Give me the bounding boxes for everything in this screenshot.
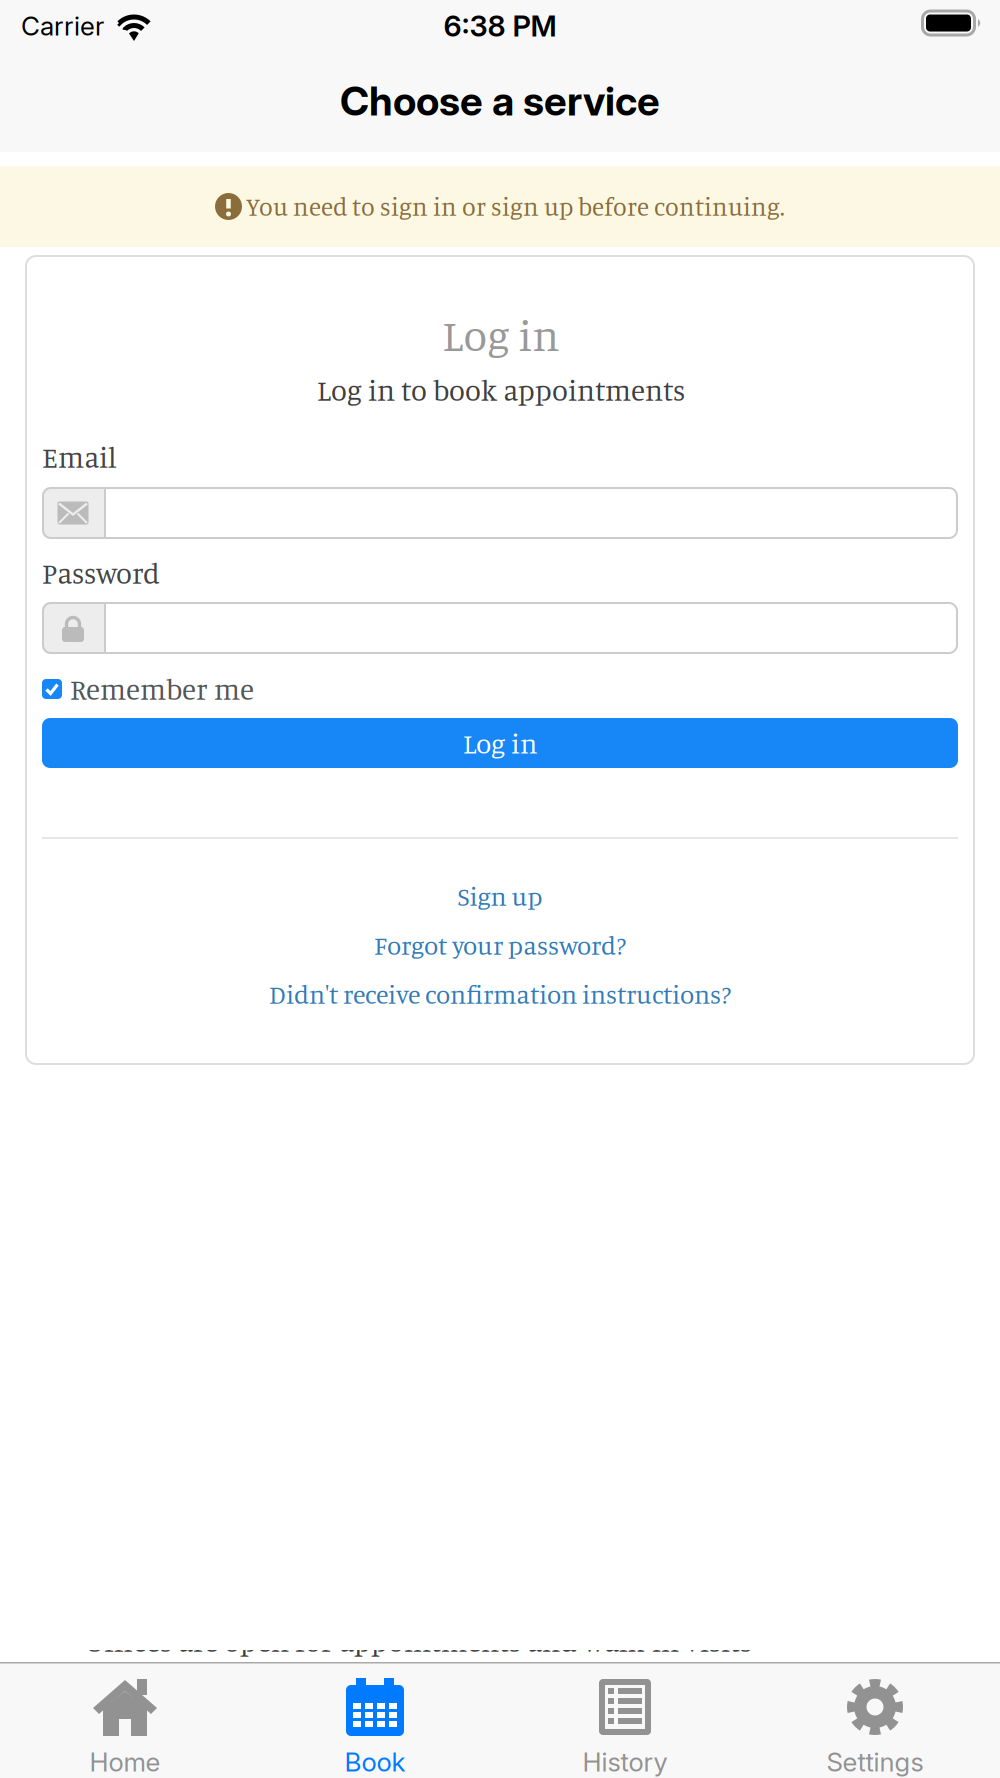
- button[interactable]: History: [500, 1662, 750, 1778]
- button[interactable]: Sign up: [457, 880, 542, 912]
- button[interactable]: Email: [42, 487, 958, 539]
- staticText: Didn't receive confirmation instructions…: [269, 978, 731, 1010]
- staticText: Offices are open for appointments and wa…: [85, 1623, 752, 1659]
- button[interactable]: Settings: [750, 1662, 1000, 1778]
- staticText: Log in: [442, 309, 559, 361]
- staticText: Forgot your password?: [374, 929, 626, 961]
- staticText: History: [582, 1746, 667, 1778]
- staticText: Log in to book appointments: [317, 372, 685, 408]
- staticText: Home: [89, 1746, 160, 1778]
- staticText: Choose a service: [340, 77, 660, 125]
- staticText: Remember me: [70, 671, 254, 707]
- button[interactable]: Home: [0, 1662, 250, 1778]
- button[interactable]: Password: [42, 602, 958, 654]
- staticText: Password: [42, 555, 160, 591]
- button[interactable]: Remember me: [42, 671, 254, 707]
- staticText: Sign up: [457, 880, 542, 912]
- button[interactable]: Forgot your password?: [374, 929, 626, 961]
- button[interactable]: Book: [250, 1662, 500, 1778]
- staticText: Settings: [826, 1746, 923, 1778]
- staticText: Carrier: [21, 10, 104, 42]
- staticText: Book: [344, 1746, 405, 1778]
- button[interactable]: Log in: [42, 718, 958, 768]
- button[interactable]: Didn't receive confirmation instructions…: [269, 978, 731, 1010]
- staticText: 6:38 PM: [443, 8, 556, 44]
- staticText: You need to sign in or sign up before co…: [246, 191, 785, 222]
- staticText: Log in: [463, 726, 537, 760]
- staticText: Email: [42, 439, 117, 475]
